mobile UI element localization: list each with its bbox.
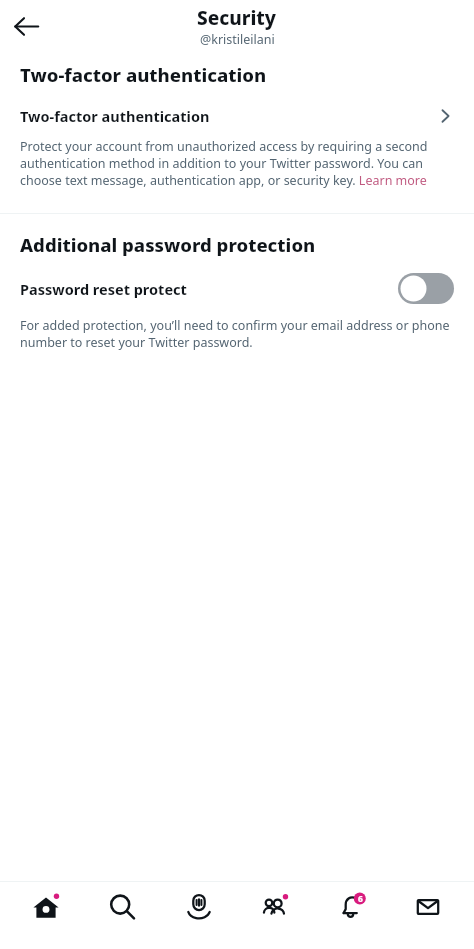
- button[interactable]: Search: [91, 882, 153, 932]
- button[interactable]: Messages: [397, 882, 459, 932]
- button[interactable]: Home: [15, 882, 77, 932]
- staticText: 6: [358, 893, 363, 905]
- staticText: For added protection, you’ll need to con…: [20, 317, 454, 351]
- staticText: Password reset protect: [20, 279, 187, 299]
- button[interactable]: Two-factor authentication: [0, 103, 474, 129]
- button[interactable]: Back: [3, 3, 49, 49]
- button[interactable]: Password reset protect: [0, 269, 474, 308]
- button[interactable]: Spaces: [168, 882, 230, 932]
- staticText: Two-factor authentication: [20, 62, 267, 87]
- button[interactable]: Notifications: [321, 882, 383, 932]
- staticText: Two-factor authentication: [20, 106, 210, 126]
- staticText: Additional password protection: [20, 232, 316, 257]
- button[interactable]: Communities: [244, 882, 306, 932]
- staticText: Protect your account from unauthorized a…: [20, 138, 454, 189]
- button[interactable]: Password reset protect toggle: [398, 273, 454, 304]
- staticText: @kristileilani: [200, 31, 275, 48]
- staticText: Security: [197, 5, 277, 31]
